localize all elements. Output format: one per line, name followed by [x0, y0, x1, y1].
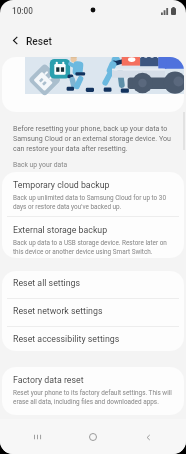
- button[interactable]: Home: [76, 420, 110, 454]
- staticText: Reset all settings: [13, 279, 81, 288]
- button[interactable]: Back: [131, 420, 165, 454]
- button[interactable]: Reset network settings: [2, 299, 184, 326]
- button[interactable]: Navigate up: [3, 28, 28, 53]
- staticText: Reset accessibility settings: [13, 335, 120, 344]
- staticText: 10:00: [12, 6, 33, 17]
- button[interactable]: Temporary cloud backup: [2, 172, 184, 216]
- staticText: Back up unlimited data to Samsung Cloud …: [13, 193, 174, 211]
- staticText: Reset network settings: [13, 307, 103, 316]
- staticText: Back up your data: [13, 160, 68, 169]
- button[interactable]: External storage backup: [2, 217, 184, 258]
- staticText: Before resetting your phone, back up you…: [13, 123, 175, 153]
- staticText: Temporary cloud backup: [13, 181, 110, 190]
- staticText: Factory data reset: [13, 376, 84, 385]
- button[interactable]: Recents: [21, 420, 55, 454]
- button[interactable]: Reset all settings: [2, 271, 184, 298]
- staticText: External storage backup: [13, 226, 108, 235]
- staticText: Back up data to a USB storage device. Re…: [13, 238, 174, 256]
- button[interactable]: Reset accessibility settings: [2, 327, 184, 351]
- button[interactable]: Factory data reset: [2, 367, 184, 415]
- staticText: Reset your phone to its factory default …: [13, 388, 174, 406]
- staticText: Reset: [26, 35, 52, 48]
